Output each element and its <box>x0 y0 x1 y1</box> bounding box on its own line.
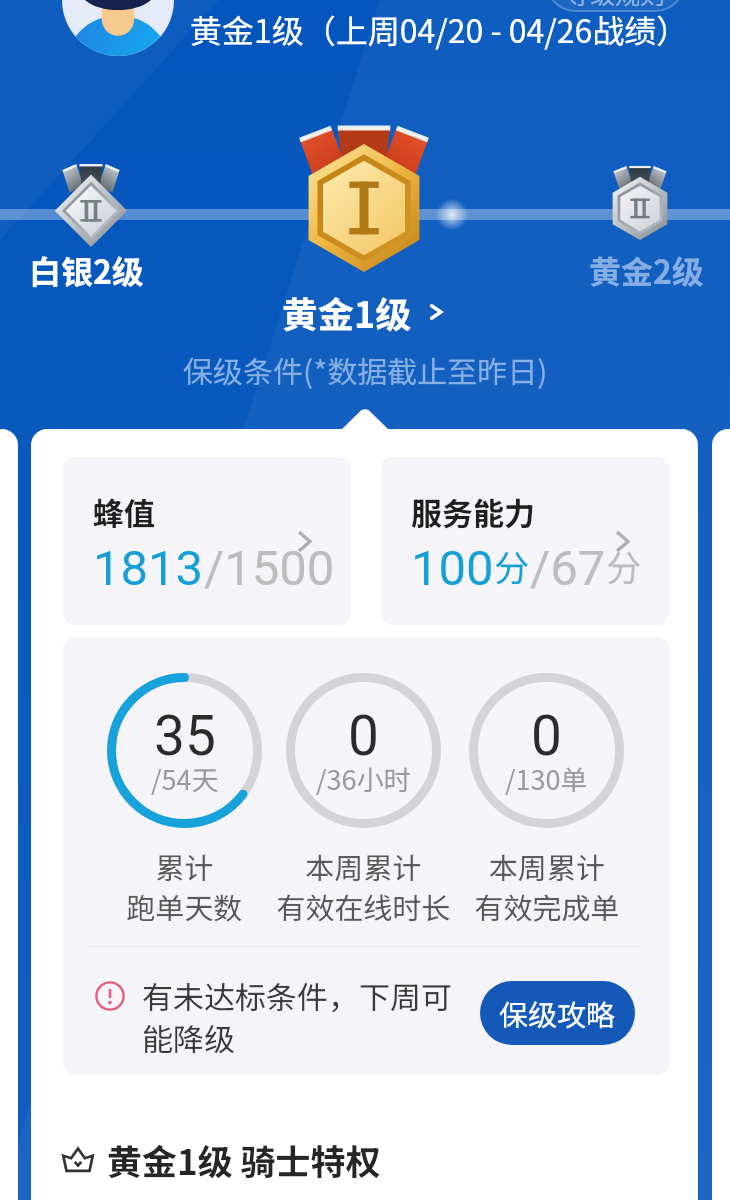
staticText: 本周累计 有效在线时长 <box>276 845 451 927</box>
button[interactable]: 用户头像 <box>62 0 174 56</box>
staticText: 等级规则 <box>565 0 666 11</box>
staticText: 有未达标条件，下周可能降级 <box>142 973 460 1060</box>
staticText: 白银2级 <box>29 247 144 293</box>
staticText: 分 <box>606 540 642 591</box>
staticText: 0 <box>531 704 562 768</box>
button[interactable]: 保级攻略 <box>480 981 635 1045</box>
button[interactable]: 等级规则 <box>545 0 686 12</box>
button[interactable]: 黄金1级 <box>282 286 448 338</box>
staticText: /36小时 <box>316 759 411 798</box>
staticText: 黄金2级 <box>589 247 704 293</box>
staticText: 黄金1级 <box>282 286 412 338</box>
staticText: 35 <box>154 704 216 768</box>
staticText: 黄金1级 骑士特权 <box>107 1134 381 1185</box>
button[interactable]: 蜂值 <box>63 457 351 625</box>
staticText: /54天 <box>151 759 219 798</box>
staticText: 蜂值 <box>93 489 155 534</box>
staticText: 1813 <box>93 540 204 597</box>
staticText: 100 <box>411 540 494 597</box>
staticText: /130单 <box>505 759 588 798</box>
staticText: 0 <box>348 704 379 768</box>
staticText: 保级攻略 <box>499 992 616 1034</box>
staticText: /67 <box>530 540 606 597</box>
button[interactable]: 服务能力 <box>381 457 669 625</box>
staticText: 累计 跑单天数 <box>126 845 243 927</box>
staticText: 保级条件(*数据截止至昨日) <box>183 348 548 391</box>
staticText: 黄金1级（上周04/20 - 04/26战绩） <box>190 6 689 52</box>
staticText: 服务能力 <box>411 489 535 534</box>
staticText: 本周累计 有效完成单 <box>474 845 620 927</box>
staticText: /1500 <box>204 540 335 597</box>
staticText: 分 <box>494 540 530 591</box>
